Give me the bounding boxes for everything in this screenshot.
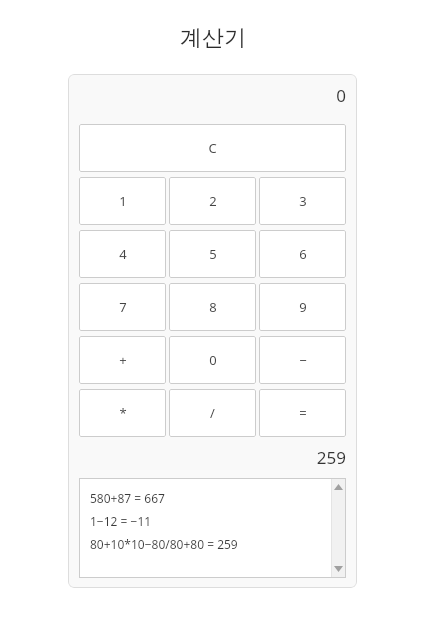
button[interactable]: 1	[79, 177, 166, 225]
staticText: 7	[119, 298, 127, 316]
staticText: 0	[336, 84, 346, 107]
staticText: 3	[299, 192, 307, 210]
button[interactable]: +	[79, 336, 166, 384]
staticText: 4	[119, 245, 127, 263]
button[interactable]: C	[79, 124, 346, 172]
staticText: 1	[119, 192, 127, 210]
button[interactable]: 6	[259, 230, 346, 278]
button[interactable]: 5	[169, 230, 256, 278]
button[interactable]: =	[259, 389, 346, 437]
staticText: 2	[209, 192, 217, 210]
staticText: 9	[299, 298, 307, 316]
staticText: 1−12 = −11	[90, 513, 152, 529]
staticText: 80+10*10−80/80+80 = 259	[90, 536, 238, 552]
button[interactable]: *	[79, 389, 166, 437]
staticText: *	[119, 404, 127, 422]
button[interactable]: 4	[79, 230, 166, 278]
staticText: 8	[209, 298, 217, 316]
button[interactable]: 8	[169, 283, 256, 331]
staticText: 5	[209, 245, 217, 263]
staticText: −	[299, 351, 307, 369]
button[interactable]: 0	[169, 336, 256, 384]
staticText: 0	[209, 351, 217, 369]
staticText: +	[119, 351, 127, 369]
staticText: 6	[299, 245, 307, 263]
staticText: 259	[316, 446, 346, 469]
button[interactable]: 7	[79, 283, 166, 331]
button[interactable]: 2	[169, 177, 256, 225]
staticText: /	[210, 404, 215, 422]
staticText: C	[208, 139, 217, 157]
button[interactable]: 3	[259, 177, 346, 225]
button[interactable]: /	[169, 389, 256, 437]
staticText: =	[299, 404, 307, 422]
button[interactable]: 9	[259, 283, 346, 331]
button[interactable]: −	[259, 336, 346, 384]
staticText: 580+87 = 667	[90, 490, 165, 506]
staticText: 계산기	[180, 24, 246, 52]
